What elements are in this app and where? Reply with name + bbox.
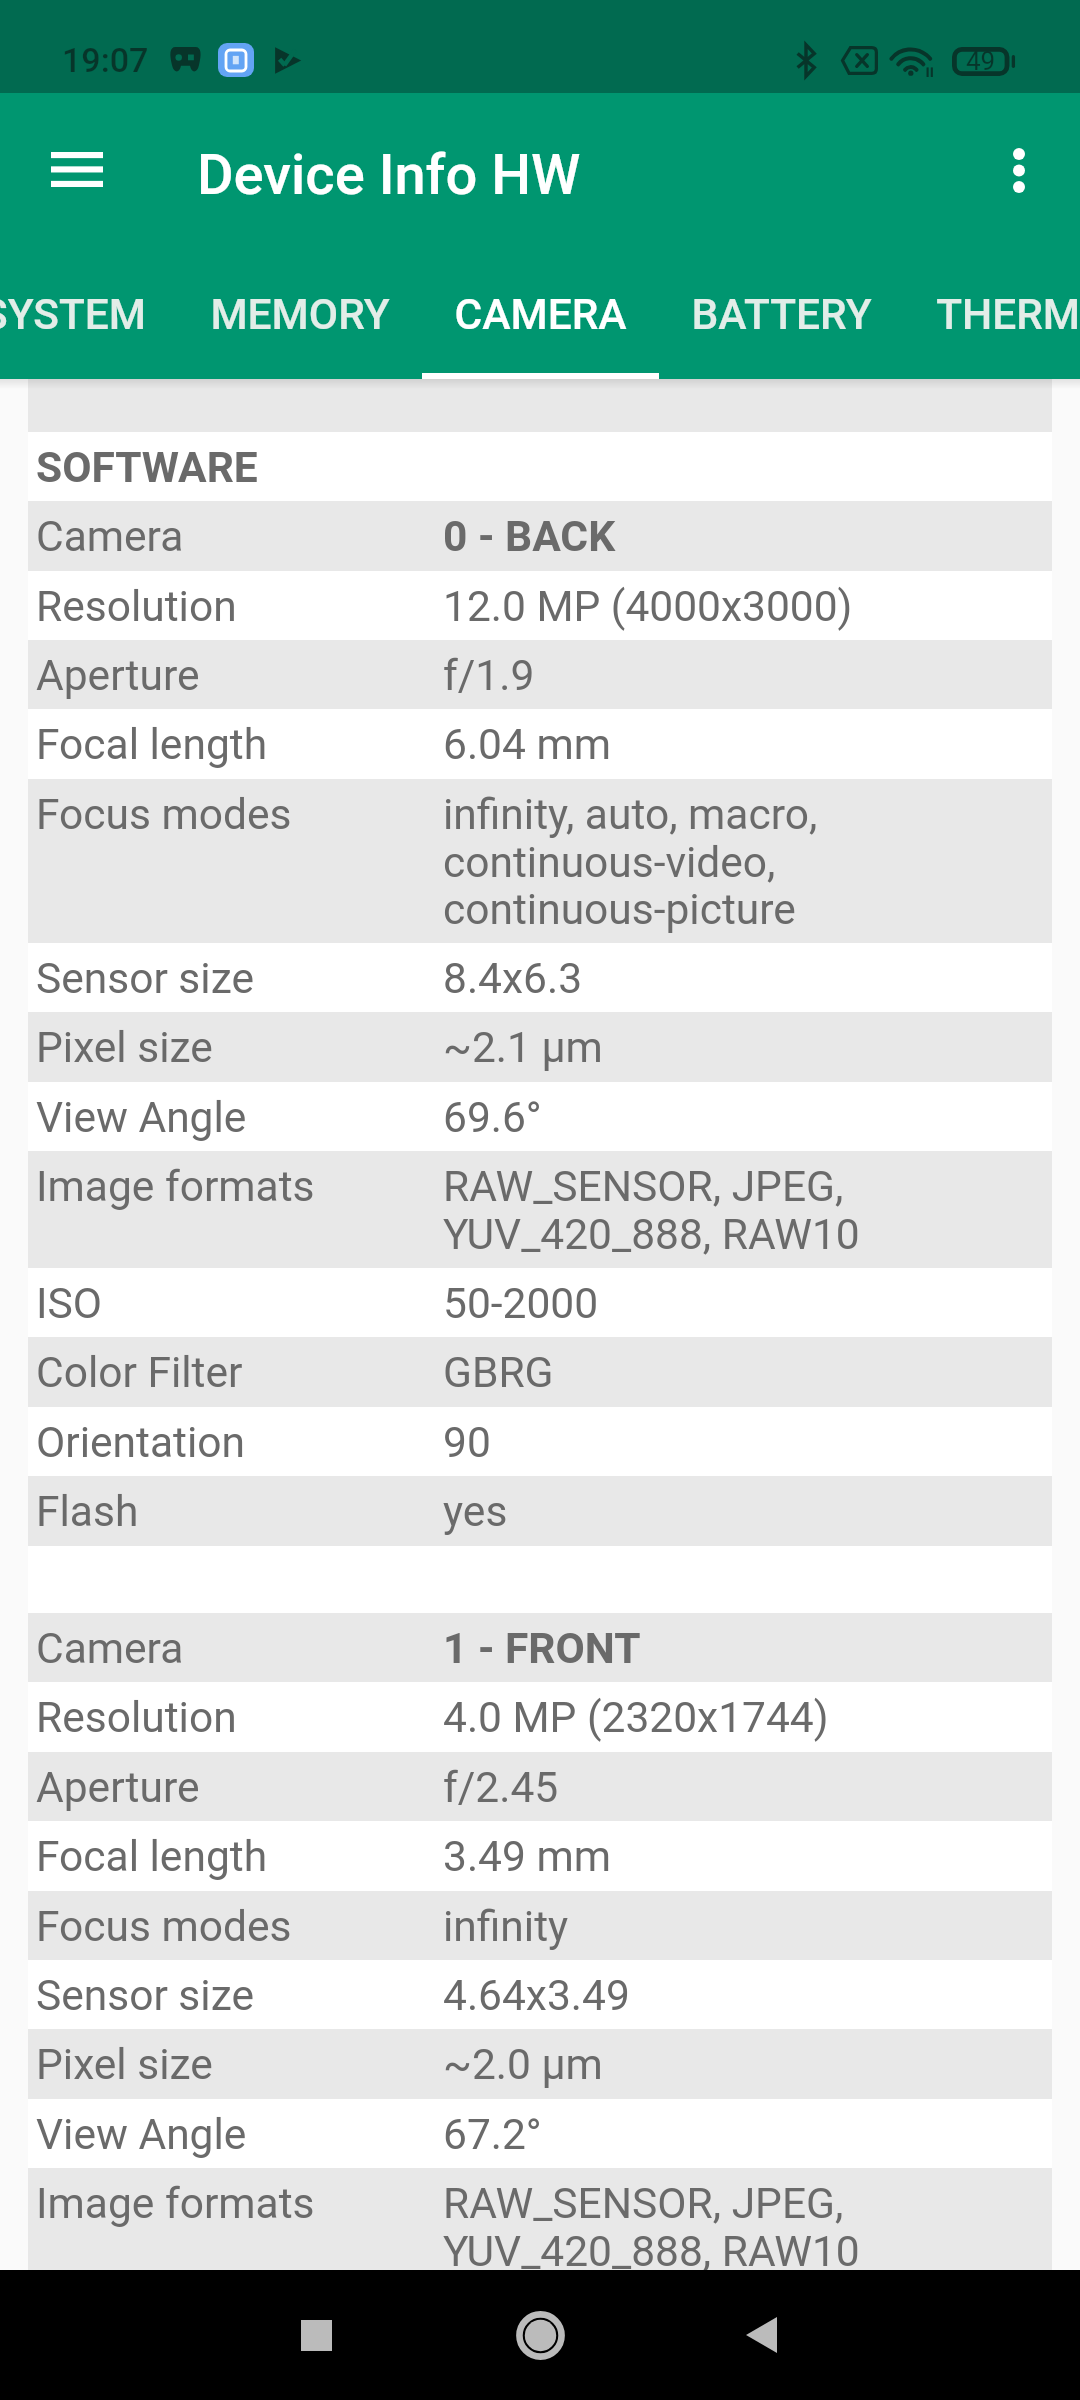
button[interactable]: Pixel size: [28, 1012, 1052, 1082]
staticText: BATTERY: [691, 290, 872, 340]
button[interactable]: Home: [480, 2275, 600, 2395]
staticText: THERMAL: [936, 290, 1080, 340]
staticText: MEMORY: [210, 290, 390, 340]
button[interactable]: Recents: [256, 2275, 376, 2395]
button[interactable]: View Angle: [28, 2099, 1052, 2168]
staticText: Pixel size: [36, 1023, 443, 1073]
button[interactable]: CAMERA: [422, 272, 659, 379]
staticText: Color Filter: [36, 1348, 443, 1398]
staticText: f/1.9: [443, 651, 535, 701]
staticText: Resolution: [36, 582, 443, 632]
button[interactable]: Resolution: [28, 571, 1052, 640]
staticText: ISO: [36, 1279, 443, 1329]
staticText: View Angle: [36, 2110, 443, 2160]
staticText: 1 - FRONT: [443, 1624, 641, 1674]
staticText: f/2.45: [443, 1763, 559, 1813]
button[interactable]: Back: [701, 2275, 821, 2395]
staticText: Camera: [36, 512, 443, 562]
staticText: Aperture: [36, 651, 443, 701]
button[interactable]: Orientation: [28, 1407, 1052, 1476]
staticText: 8.4x6.3: [443, 954, 583, 1004]
staticText: 4.0 MP (2320x1744): [443, 1693, 829, 1743]
button[interactable]: Flash: [28, 1476, 1052, 1546]
staticText: RAW_SENSOR, JPEG, YUV_420_888, RAW10: [443, 2179, 860, 2270]
staticText: Focal length: [36, 720, 443, 770]
button[interactable]: More options: [971, 122, 1067, 218]
button[interactable]: Camera: [28, 501, 1052, 571]
staticText: infinity: [443, 1902, 569, 1952]
staticText: 6.04 mm: [443, 720, 611, 770]
staticText: 90: [443, 1418, 491, 1468]
staticText: Image formats: [36, 2179, 443, 2229]
staticText: Camera: [36, 1624, 443, 1674]
button[interactable]: Pixel size: [28, 2029, 1052, 2099]
button[interactable]: View Angle: [28, 1082, 1052, 1151]
staticText: 19:07: [62, 40, 149, 80]
button[interactable]: Sensor size: [28, 1960, 1052, 2029]
staticText: View Angle: [36, 1093, 443, 1143]
button[interactable]: ISO: [28, 1268, 1052, 1337]
staticText: SOFTWARE: [36, 443, 258, 493]
staticText: yes: [443, 1487, 508, 1537]
button[interactable]: Image formats: [28, 2168, 1052, 2270]
staticText: Focus modes: [36, 1902, 443, 1952]
staticText: Sensor size: [36, 954, 443, 1004]
staticText: Orientation: [36, 1418, 443, 1468]
staticText: 67.2°: [443, 2110, 542, 2160]
staticText: Focal length: [36, 1832, 443, 1882]
staticText: Aperture: [36, 1763, 443, 1813]
staticText: SYSTEM: [0, 290, 146, 340]
staticText: 4.64x3.49: [443, 1971, 630, 2021]
staticText: 12.0 MP (4000x3000): [443, 582, 853, 632]
staticText: Image formats: [36, 1162, 443, 1212]
button[interactable]: THERMAL: [904, 272, 1080, 379]
staticText: 50-2000: [443, 1279, 599, 1329]
staticText: 0 - BACK: [443, 512, 616, 562]
button[interactable]: Focus modes: [28, 779, 1052, 943]
staticText: infinity, auto, macro, continuous-video,…: [443, 790, 818, 934]
staticText: Resolution: [36, 1693, 443, 1743]
staticText: Flash: [36, 1487, 443, 1537]
button[interactable]: Open navigation drawer: [27, 119, 127, 219]
button[interactable]: Focus modes: [28, 1891, 1052, 1960]
staticText: Device Info HW: [197, 142, 581, 208]
staticText: 49: [966, 46, 996, 76]
button[interactable]: Aperture: [28, 640, 1052, 709]
staticText: 3.49 mm: [443, 1832, 611, 1882]
button[interactable]: Resolution: [28, 1682, 1052, 1752]
staticText: Focus modes: [36, 790, 443, 840]
staticText: Sensor size: [36, 1971, 443, 2021]
button[interactable]: BATTERY: [659, 272, 904, 379]
button[interactable]: Aperture: [28, 1752, 1052, 1821]
staticText: GBRG: [443, 1348, 554, 1398]
staticText: RAW_SENSOR, JPEG, YUV_420_888, RAW10: [443, 1162, 860, 1259]
button[interactable]: Sensor size: [28, 943, 1052, 1012]
staticText: ~2.1 µm: [443, 1023, 603, 1073]
button[interactable]: Camera: [28, 1613, 1052, 1682]
button[interactable]: Image formats: [28, 1151, 1052, 1268]
button[interactable]: Focal length: [28, 709, 1052, 779]
staticText: Pixel size: [36, 2040, 443, 2090]
staticText: 69.6°: [443, 1093, 542, 1143]
staticText: CAMERA: [454, 290, 627, 340]
button[interactable]: MEMORY: [178, 272, 422, 379]
button[interactable]: Color Filter: [28, 1337, 1052, 1407]
staticText: ~2.0 µm: [443, 2040, 603, 2090]
button[interactable]: Focal length: [28, 1821, 1052, 1891]
button[interactable]: SYSTEM: [0, 272, 178, 379]
